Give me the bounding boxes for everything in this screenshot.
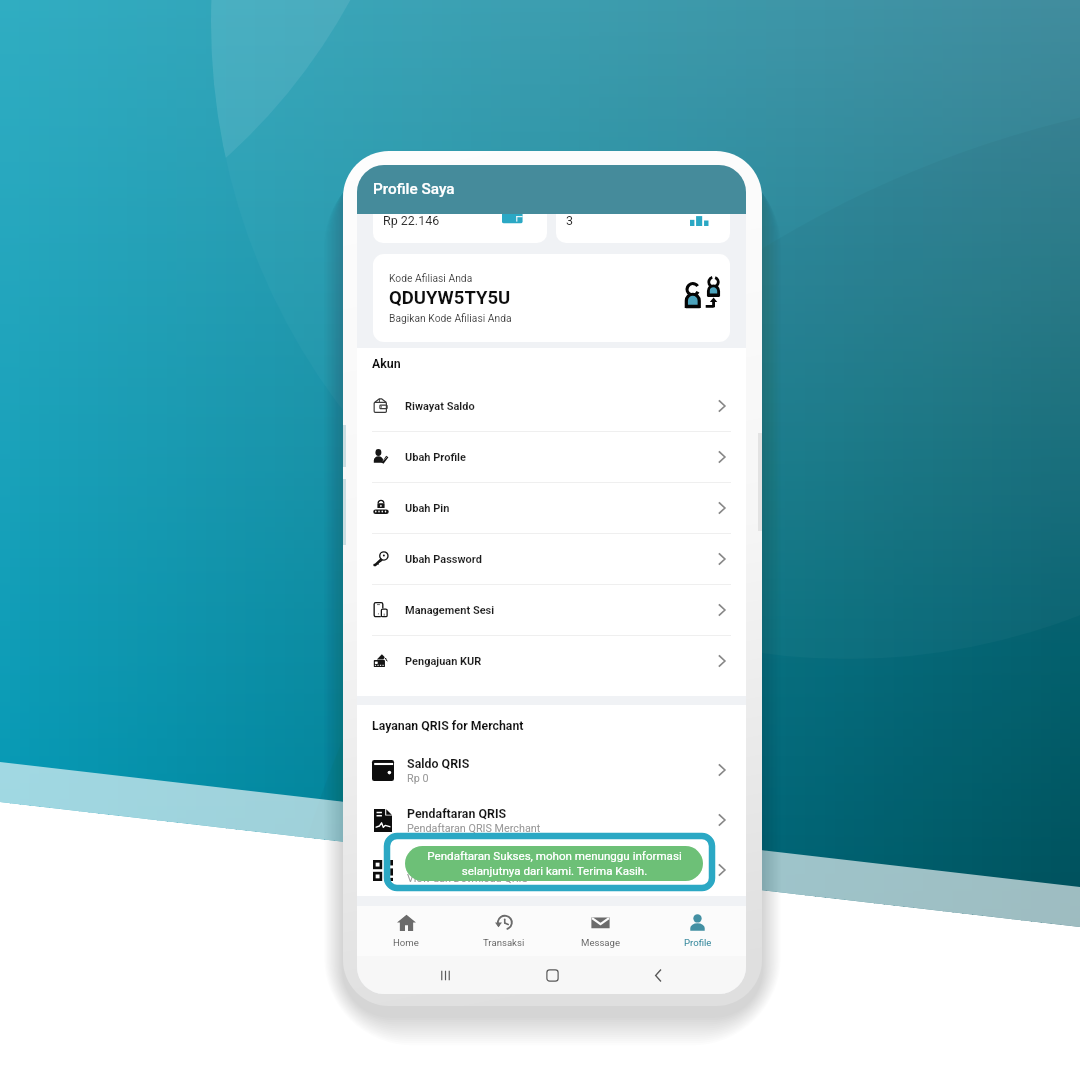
staticText: QDUYW5TY5U (389, 287, 511, 309)
button[interactable]: Ubah Password (357, 534, 746, 584)
staticText: Management Sesi (405, 604, 495, 617)
staticText: Pendaftaran Sukses, mohon menunggu infor… (427, 849, 682, 878)
staticText: Ubah Profile (405, 451, 466, 464)
staticText: Akun (372, 357, 401, 371)
staticText: 3 (566, 214, 574, 228)
button[interactable]: Pengajuan KUR (357, 636, 746, 686)
staticText: Message (581, 937, 621, 948)
button[interactable]: Pendaftaran QRIS (357, 795, 746, 845)
button[interactable]: Home (534, 957, 570, 993)
staticText: Pengajuan KUR (405, 655, 482, 668)
staticText: Profile (684, 937, 712, 948)
staticText: Transaksi (483, 937, 525, 948)
button[interactable]: Riwayat Saldo (357, 381, 746, 431)
staticText: Ubah Password (405, 553, 482, 566)
staticText: Ubah Pin (405, 502, 450, 515)
staticText: Saldo QRIS (407, 756, 470, 771)
staticText: Bagikan Kode Afiliasi Anda (389, 312, 512, 324)
button[interactable]: Rp 22.146 (373, 214, 547, 243)
staticText: View QRIS (407, 856, 465, 871)
staticText: Pendaftaran QRIS Merchant (407, 822, 541, 835)
staticText: Layanan QRIS for Merchant (372, 719, 524, 733)
staticText: Home (393, 937, 419, 948)
staticText: Pendaftaran QRIS (407, 806, 507, 821)
button[interactable]: Ubah Profile (357, 432, 746, 482)
staticText: Profile Saya (373, 180, 455, 198)
staticText: Rp 22.146 (383, 214, 440, 228)
button[interactable]: Transaksi (455, 906, 552, 956)
button[interactable]: Profile (649, 906, 746, 956)
button[interactable]: Recents (427, 957, 463, 993)
staticText: Rp 0 (407, 772, 429, 785)
button[interactable]: Message (552, 906, 649, 956)
staticText: Kode Afiliasi Anda (389, 272, 473, 284)
staticText: Riwayat Saldo (405, 400, 475, 413)
button[interactable]: Management Sesi (357, 585, 746, 635)
button[interactable]: Kode Afiliasi Anda (373, 254, 730, 342)
button[interactable]: Ubah Pin (357, 483, 746, 533)
button[interactable]: View QRIS (357, 845, 746, 895)
button[interactable]: Home (357, 906, 455, 956)
button[interactable]: Back (640, 957, 676, 993)
other: Bagikan kode afiliasi (685, 276, 723, 314)
staticText: View dan Download QRIS (407, 872, 528, 885)
button[interactable]: 3 (556, 214, 730, 243)
button[interactable]: Saldo QRIS (357, 745, 746, 795)
